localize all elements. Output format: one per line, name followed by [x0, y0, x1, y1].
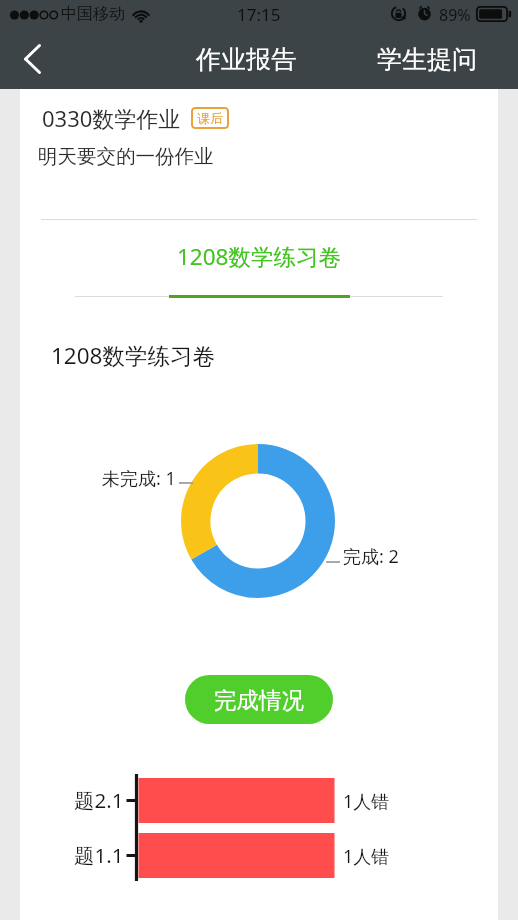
- staticText: 学生提问: [377, 44, 477, 75]
- button[interactable]: 1208数学练习卷: [0, 241, 518, 272]
- button[interactable]: 学生提问: [377, 44, 477, 75]
- staticText: 1208数学练习卷: [51, 340, 215, 371]
- staticText: 课后: [197, 110, 223, 126]
- button[interactable]: 作业报告: [196, 44, 296, 75]
- staticText: 0330数学作业: [42, 103, 181, 133]
- staticText: 明天要交的一份作业: [38, 144, 214, 169]
- staticText: 中国移动: [61, 4, 125, 24]
- staticText: 89%: [439, 4, 471, 26]
- staticText: 完成: 2: [343, 544, 399, 569]
- staticText: 17:15: [237, 3, 281, 26]
- staticText: 完成情况: [214, 686, 304, 714]
- button[interactable]: Back: [4, 31, 60, 87]
- button[interactable]: 完成情况: [185, 675, 333, 724]
- staticText: 未完成: 1: [102, 466, 176, 491]
- staticText: 1人错: [343, 789, 390, 814]
- staticText: 题1.1: [74, 841, 124, 869]
- staticText: 作业报告: [196, 44, 296, 75]
- staticText: 1208数学练习卷: [177, 241, 341, 272]
- staticText: 1人错: [343, 844, 390, 869]
- staticText: 题2.1: [74, 786, 124, 814]
